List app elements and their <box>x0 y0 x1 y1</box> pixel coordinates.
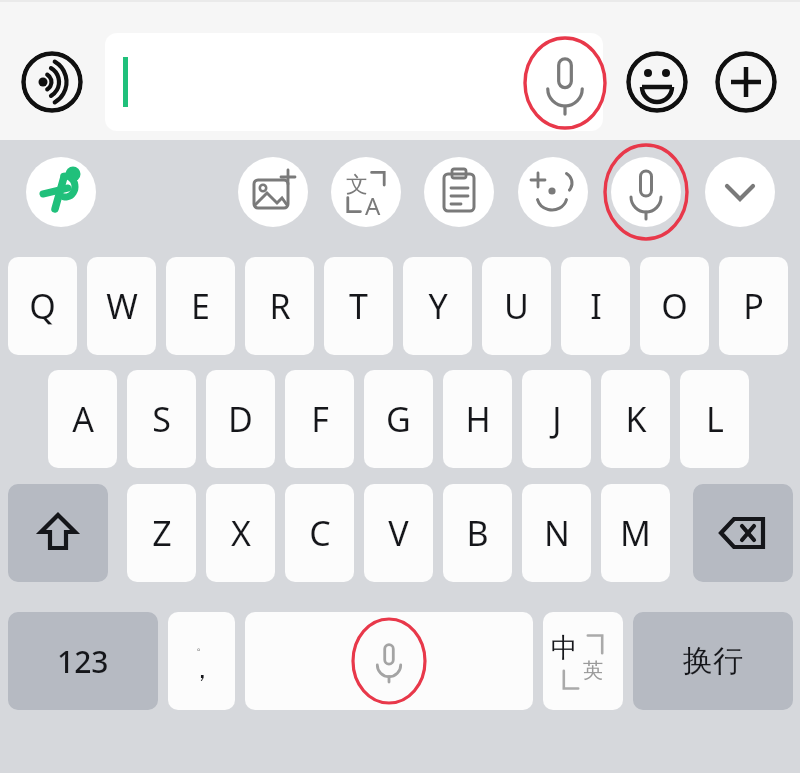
button[interactable]: Image search <box>238 157 308 227</box>
button[interactable]: Y <box>403 257 472 355</box>
staticText: W <box>106 283 138 329</box>
staticText: U <box>504 283 529 329</box>
staticText: 英 <box>583 658 603 683</box>
button[interactable]: Stickers <box>518 157 588 227</box>
staticText: F <box>311 396 329 442</box>
button[interactable]: Backspace <box>693 484 793 582</box>
staticText: S <box>152 396 171 442</box>
button[interactable]: Shift <box>8 484 108 582</box>
button[interactable]: A <box>48 370 117 468</box>
button[interactable]: N <box>522 484 591 582</box>
staticText: 换行 <box>683 642 743 680</box>
button[interactable]: K <box>601 370 670 468</box>
button[interactable]: 换行 <box>633 612 793 710</box>
button[interactable]: Add <box>715 51 777 113</box>
staticText: D <box>228 396 253 442</box>
button[interactable]: C <box>285 484 354 582</box>
staticText: V <box>388 510 409 556</box>
button[interactable]: X <box>206 484 275 582</box>
button[interactable]: R <box>245 257 314 355</box>
staticText: 123 <box>57 641 109 682</box>
staticText: I <box>590 283 602 329</box>
staticText: P <box>743 283 764 329</box>
button[interactable]: T <box>324 257 393 355</box>
button[interactable] <box>105 33 603 131</box>
staticText: Q <box>29 283 56 329</box>
staticText: L <box>706 396 724 442</box>
button[interactable]: 。 <box>168 612 235 710</box>
staticText: Z <box>152 510 172 556</box>
button[interactable]: J <box>522 370 591 468</box>
staticText: G <box>386 396 411 442</box>
staticText: Y <box>428 283 448 329</box>
button[interactable]: Collapse toolbar <box>705 157 775 227</box>
button[interactable]: 123 <box>8 612 158 710</box>
button[interactable]: Clipboard <box>424 157 494 227</box>
staticText: N <box>544 510 570 556</box>
button[interactable]: Keyboard settings <box>26 157 96 227</box>
staticText: M <box>620 510 651 556</box>
staticText: ， <box>189 653 215 686</box>
staticText: 。 <box>196 637 209 653</box>
staticText: E <box>191 283 210 329</box>
button[interactable]: O <box>640 257 709 355</box>
button[interactable]: Voice typing <box>611 157 681 227</box>
staticText: A <box>365 189 381 222</box>
staticText: K <box>625 396 647 442</box>
button[interactable]: W <box>87 257 156 355</box>
staticText: 中 <box>551 631 578 665</box>
staticText: 文 <box>346 171 368 199</box>
button[interactable]: Switch Chinese English <box>543 612 623 710</box>
button[interactable]: B <box>443 484 512 582</box>
staticText: X <box>231 510 251 556</box>
button[interactable]: G <box>364 370 433 468</box>
button[interactable]: Emoji <box>626 51 688 113</box>
staticText: A <box>72 396 94 442</box>
button[interactable]: I <box>561 257 630 355</box>
button[interactable]: Space <box>245 612 533 710</box>
button[interactable]: M <box>601 484 670 582</box>
button[interactable]: Q <box>8 257 77 355</box>
button[interactable]: V <box>364 484 433 582</box>
button[interactable]: U <box>482 257 551 355</box>
button[interactable]: E <box>166 257 235 355</box>
staticText: J <box>552 396 562 442</box>
staticText: H <box>465 396 491 442</box>
staticText: R <box>269 283 291 329</box>
button[interactable]: F <box>285 370 354 468</box>
button[interactable]: H <box>443 370 512 468</box>
button[interactable]: Translate <box>331 157 401 227</box>
button[interactable]: Microphone <box>520 38 610 128</box>
button[interactable]: P <box>719 257 788 355</box>
staticText: B <box>466 510 489 556</box>
button[interactable]: Voice assistant <box>21 51 83 113</box>
staticText: C <box>309 510 331 556</box>
button[interactable]: S <box>127 370 196 468</box>
button[interactable]: Z <box>127 484 196 582</box>
staticText: O <box>661 283 688 329</box>
button[interactable]: D <box>206 370 275 468</box>
staticText: T <box>349 283 368 329</box>
button[interactable]: L <box>680 370 749 468</box>
